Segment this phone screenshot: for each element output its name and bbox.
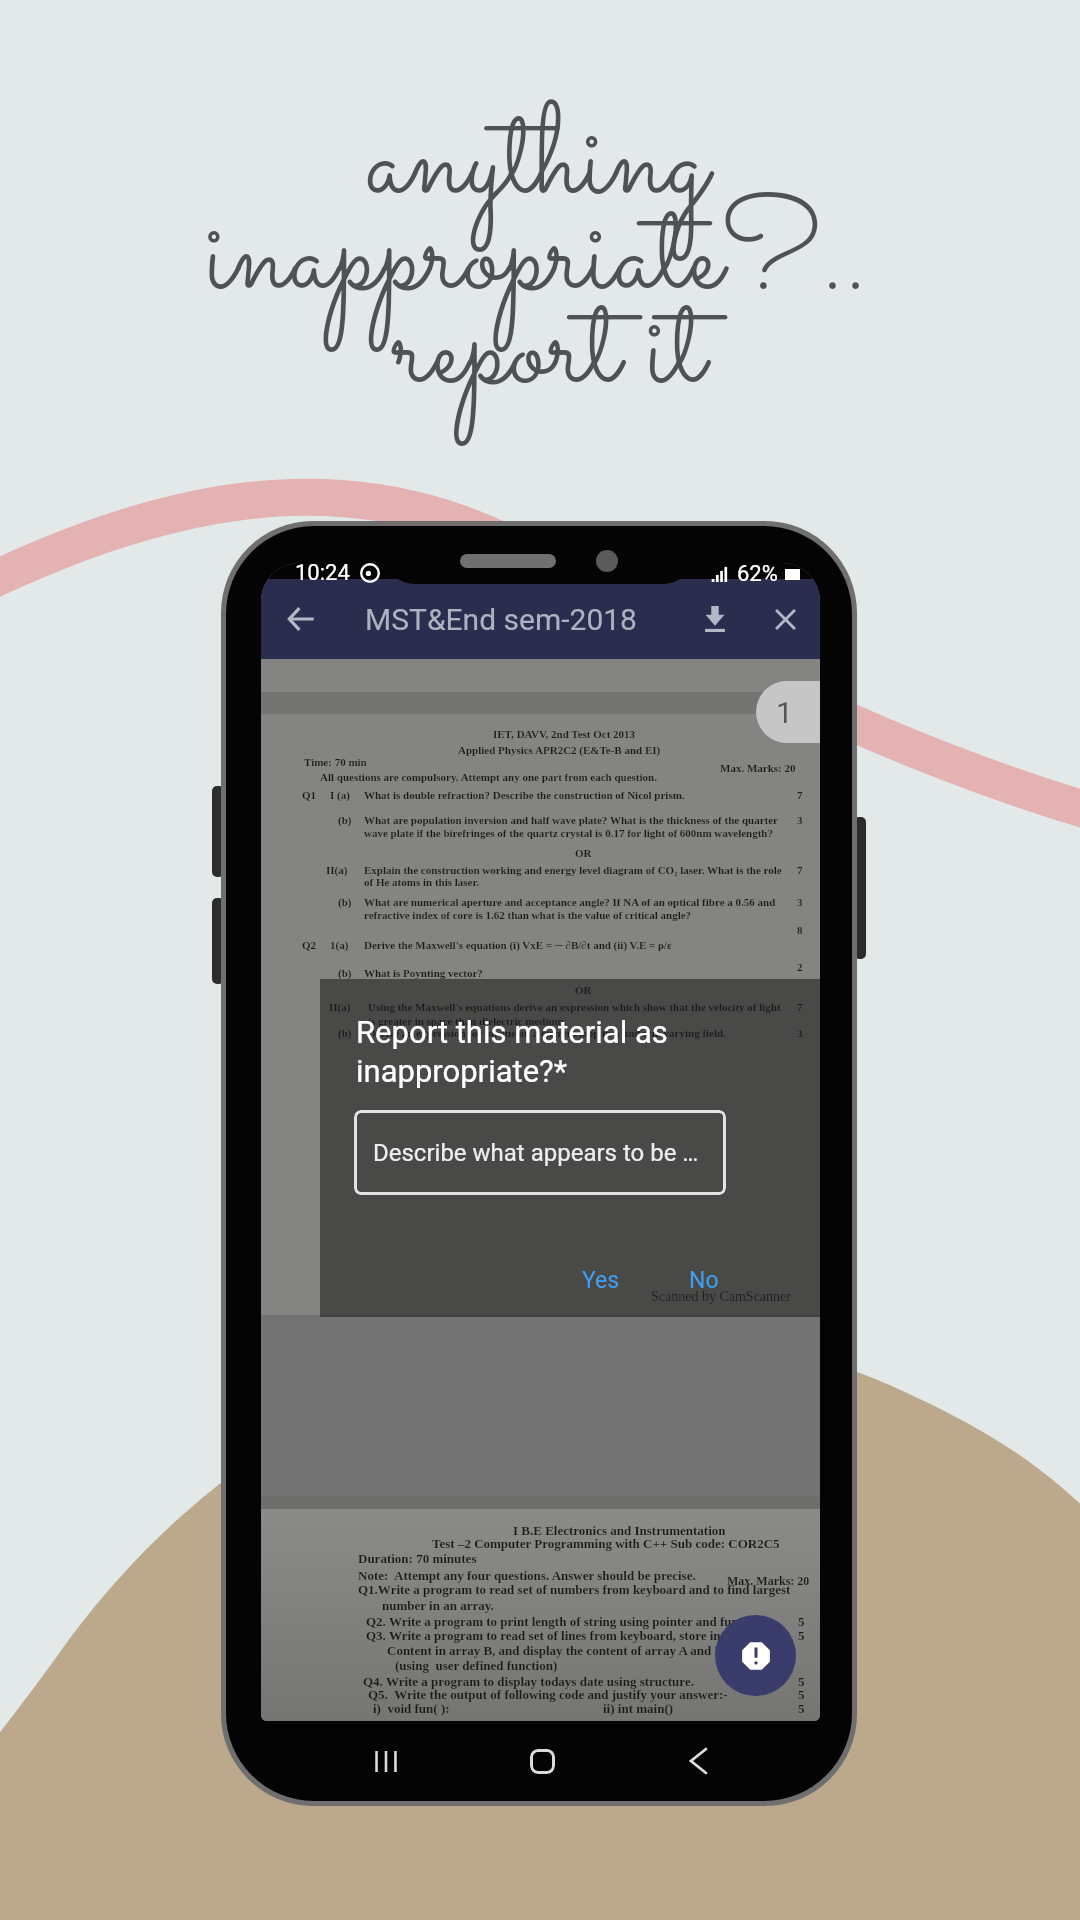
staticText: 10:24 <box>295 560 350 586</box>
staticText: 3 <box>797 1027 803 1039</box>
staticText: 1(a) <box>330 939 349 951</box>
staticText: (b) <box>338 814 352 826</box>
staticText: number in an array. <box>382 1598 494 1612</box>
staticText: Yes <box>582 1267 620 1294</box>
button[interactable]: Back <box>667 1730 729 1792</box>
staticText: 3 <box>797 814 803 826</box>
staticText: All questions are compulsory. Attempt an… <box>320 771 657 783</box>
staticText: II(a) <box>326 864 348 876</box>
staticText: Time: 70 min <box>304 756 367 768</box>
button[interactable]: Yes <box>566 1259 636 1302</box>
staticText: Q4. Write a program to display todays da… <box>363 1674 694 1688</box>
button[interactable]: Close <box>761 595 809 643</box>
staticText: Using the Maxwell's equations derive an … <box>368 1001 781 1013</box>
staticText: anything <box>137 73 937 260</box>
button[interactable]: Navigate up <box>277 595 325 643</box>
staticText: (b) <box>338 967 352 979</box>
button[interactable]: Recent apps <box>355 1730 417 1792</box>
staticText: Q2. Write a program to print length of s… <box>366 1614 753 1628</box>
staticText: Q3. Write a program to read set of lines… <box>366 1628 742 1642</box>
staticText: Q1 <box>302 789 317 801</box>
staticText: (b) <box>338 896 352 908</box>
staticText: MST&End sem-2018 <box>365 602 637 637</box>
staticText: ii) int main() <box>603 1701 674 1715</box>
staticText: OR <box>575 847 592 859</box>
button[interactable]: Home <box>511 1730 573 1792</box>
staticText: What is Poynting vector? <box>364 967 483 979</box>
staticText: 5 <box>798 1628 805 1642</box>
staticText: I B.E Electronics and Instrumentation <box>513 1523 726 1537</box>
staticText: report it <box>149 262 949 449</box>
staticText: is greater in space than dielectric medi… <box>368 1015 567 1027</box>
staticText: 8 <box>797 924 803 936</box>
staticText: Max. Marks: 20 <box>727 1574 810 1587</box>
staticText: What are numerical aperture and acceptan… <box>364 896 776 908</box>
staticText: Max. Marks: 20 <box>720 762 796 774</box>
staticText: Describe what appears to be … <box>373 1139 699 1167</box>
staticText: OR <box>575 984 592 996</box>
staticText: refractive index of core is 1.62 than wh… <box>364 909 692 921</box>
staticText: 3 <box>797 896 803 908</box>
staticText: Test –2 Computer Programming with C++ Su… <box>432 1536 780 1550</box>
staticText: Applied Physics APR2C2 (E&Te-B and EI) <box>458 744 661 756</box>
staticText: 1 <box>776 695 793 730</box>
staticText: II(a) <box>329 1001 351 1013</box>
staticText: inappropriate?* <box>356 1053 568 1089</box>
staticText: i) void fun( ): <box>373 1701 450 1715</box>
staticText: Q1.Write a program to read set of number… <box>358 1582 791 1596</box>
staticText: I (a) <box>330 789 350 801</box>
staticText: 7 <box>797 1001 803 1013</box>
staticText: Content in array B, and display the cont… <box>387 1643 738 1657</box>
staticText: Q2 <box>302 939 317 951</box>
button[interactable]: Download <box>691 595 739 643</box>
button[interactable]: No <box>673 1259 735 1302</box>
staticText: of He atoms in this laser. <box>364 876 480 888</box>
staticText: What is double refraction? Describe the … <box>364 789 685 801</box>
staticText: Scanned by CamScanner <box>651 1289 791 1305</box>
staticText: 5 <box>798 1687 805 1701</box>
staticText: No <box>689 1267 719 1294</box>
staticText: (using user defined function) <box>395 1658 558 1672</box>
staticText: Q5. Write the output of following code a… <box>368 1687 728 1701</box>
staticText: 7 <box>797 789 803 801</box>
staticText: 5 <box>798 1674 805 1688</box>
staticText: Duration: 70 minutes <box>358 1551 477 1565</box>
staticText: inappropriate?.. <box>137 168 937 355</box>
staticText: 2 <box>797 961 803 973</box>
staticText: Derive the Maxwell's equation (i) VxE = … <box>364 939 672 951</box>
staticText: 5 <box>798 1701 805 1715</box>
button[interactable]: Describe what appears to be … <box>354 1110 726 1195</box>
staticText: Note: Attempt any four questions. Answer… <box>358 1568 696 1582</box>
staticText: What are population inversion and half w… <box>364 814 778 826</box>
staticText: Derive an expression for torque on a cur… <box>368 1027 726 1039</box>
staticText: 7 <box>797 864 803 876</box>
staticText: 5 <box>798 1614 805 1628</box>
staticText: 62% <box>737 561 778 587</box>
staticText: IET, DAVV, 2nd Test Oct 2013 <box>493 728 636 740</box>
staticText: Report this material as <box>356 1014 668 1050</box>
button[interactable]: Report content <box>715 1615 796 1696</box>
staticText: Explain the construction working and ene… <box>364 864 782 876</box>
staticText: (b) <box>338 1027 352 1039</box>
staticText: wave plate if the birefringes of the qua… <box>364 827 773 839</box>
